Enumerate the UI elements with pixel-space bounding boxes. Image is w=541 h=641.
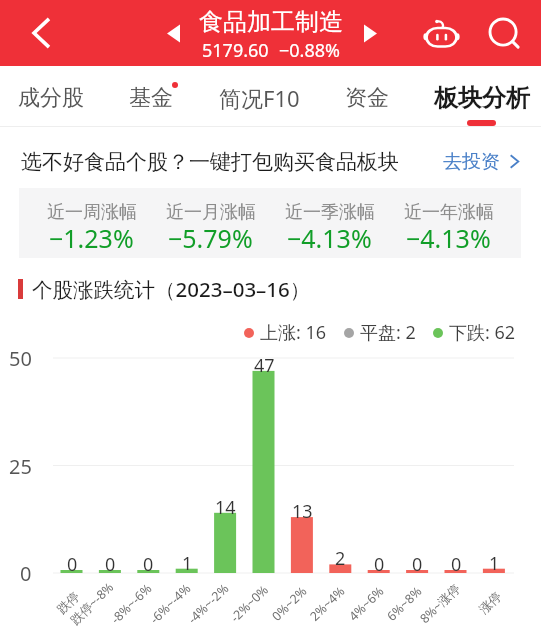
staticText: 个股涨跌统计（2023–03–16）	[32, 275, 311, 303]
staticText: 近一周涨幅	[47, 201, 137, 224]
staticText: −1.23%	[49, 221, 134, 255]
staticText: 0	[67, 552, 78, 577]
button[interactable]: 资金	[345, 66, 389, 127]
staticText: 近一年涨幅	[404, 201, 494, 224]
button[interactable]: 板块分析	[434, 66, 530, 127]
staticText: 50	[9, 345, 32, 372]
button[interactable]: 成分股	[18, 66, 84, 127]
staticText: 0%~2%	[268, 582, 311, 625]
staticText: 近一季涨幅	[285, 201, 375, 224]
staticText: 0	[412, 552, 423, 577]
button[interactable]: 简况F10	[219, 66, 300, 127]
staticText: 1	[489, 551, 500, 576]
staticText: 基金	[129, 84, 173, 112]
staticText: 食品加工制造	[199, 7, 343, 37]
staticText: 14	[215, 495, 236, 520]
staticText: 成分股	[18, 84, 84, 112]
staticText: 跌停	[54, 589, 83, 617]
staticText: 13	[292, 499, 313, 524]
staticText: 近一月涨幅	[166, 201, 256, 224]
staticText: 0	[451, 552, 462, 577]
staticText: 涨停	[476, 589, 505, 617]
staticText: -2%~0%	[227, 581, 272, 626]
button[interactable]: 基金	[129, 66, 173, 127]
button[interactable]: AI assistant	[415, 7, 467, 59]
staticText: 0	[143, 552, 154, 577]
staticText: 8%~涨停	[416, 580, 464, 627]
staticText: 资金	[345, 84, 389, 112]
staticText: -8%~-6%	[107, 580, 156, 627]
staticText: 2	[335, 546, 346, 571]
staticText: 去投资	[443, 150, 500, 174]
staticText: 0	[20, 560, 32, 587]
staticText: 上涨: 16	[260, 320, 327, 345]
staticText: 25	[9, 453, 32, 480]
staticText: −0.88%	[279, 38, 340, 63]
staticText: 47	[254, 353, 275, 378]
button[interactable]: 选不好食品个股？一键打包购买食品板块	[0, 127, 541, 188]
staticText: 6%~8%	[383, 582, 426, 625]
staticText: -6%~-4%	[146, 580, 195, 627]
staticText: 跌停~-8%	[67, 579, 117, 628]
staticText: 简况F10	[219, 83, 300, 113]
staticText: 0	[374, 552, 385, 577]
button[interactable]: Back	[19, 11, 63, 55]
staticText: 0	[105, 552, 116, 577]
staticText: -4%~-2%	[184, 580, 233, 627]
staticText: 板块分析	[434, 83, 530, 113]
staticText: −4.13%	[287, 221, 372, 255]
staticText: 1	[182, 551, 193, 576]
staticText: 下跌: 62	[449, 320, 516, 345]
button[interactable]: Previous sector	[150, 8, 196, 58]
staticText: 4%~6%	[345, 582, 388, 625]
staticText: 平盘: 2	[360, 320, 416, 345]
staticText: 选不好食品个股？一键打包购买食品板块	[21, 149, 399, 175]
button[interactable]: Next sector	[347, 8, 393, 58]
button[interactable]: Search	[479, 8, 529, 58]
staticText: −4.13%	[406, 221, 491, 255]
staticText: −5.79%	[168, 221, 253, 255]
staticText: 5179.60	[202, 38, 269, 63]
staticText: 2%~4%	[306, 582, 349, 625]
